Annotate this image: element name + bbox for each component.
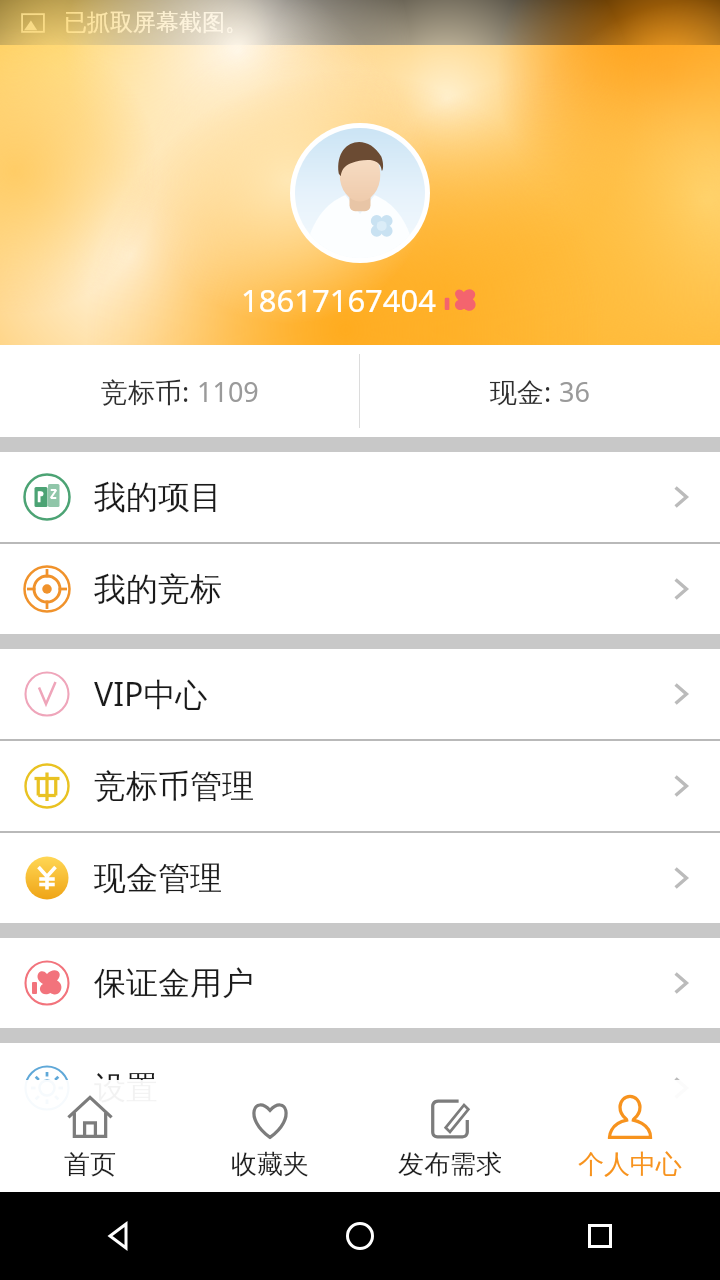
staticText: 我的项目 [94, 477, 222, 517]
button[interactable]: 首页 [0, 1080, 180, 1192]
staticText: 已抓取屏幕截图。 [64, 8, 248, 37]
button[interactable]: 发布需求 [360, 1080, 540, 1192]
button[interactable]: 个人中心 [540, 1080, 720, 1192]
button[interactable]: 竞标币: [0, 345, 359, 437]
button[interactable]: 我的竞标 [0, 544, 720, 634]
staticText: 发布需求 [398, 1148, 502, 1181]
staticText: 竞标币: [101, 373, 197, 410]
button[interactable]: Recents [575, 1211, 625, 1261]
staticText: 现金: [490, 373, 559, 410]
button[interactable]: 我的项目 [0, 452, 720, 542]
button[interactable]: Home [335, 1211, 385, 1261]
staticText: 现金管理 [94, 858, 222, 898]
button[interactable]: 设置 [0, 1043, 720, 1133]
staticText: 36 [559, 373, 590, 410]
staticText: 保证金用户 [94, 963, 254, 1003]
staticText: 设置 [94, 1068, 158, 1108]
button[interactable]: 现金管理 [0, 833, 720, 923]
staticText: 竞标币管理 [94, 766, 254, 806]
staticText: 收藏夹 [231, 1148, 309, 1181]
staticText: 1109 [197, 373, 259, 410]
staticText: 18617167404 [241, 279, 437, 321]
button[interactable]: VIP中心 [0, 649, 720, 739]
staticText: 我的竞标 [94, 569, 222, 609]
staticText: 首页 [64, 1148, 116, 1181]
button[interactable]: 保证金用户 [0, 938, 720, 1028]
button[interactable]: 现金: [360, 345, 720, 437]
button[interactable]: 收藏夹 [180, 1080, 360, 1192]
staticText: VIP中心 [94, 672, 208, 716]
staticText: 个人中心 [578, 1148, 682, 1181]
button[interactable]: Back [95, 1211, 145, 1261]
button[interactable]: 竞标币管理 [0, 741, 720, 831]
